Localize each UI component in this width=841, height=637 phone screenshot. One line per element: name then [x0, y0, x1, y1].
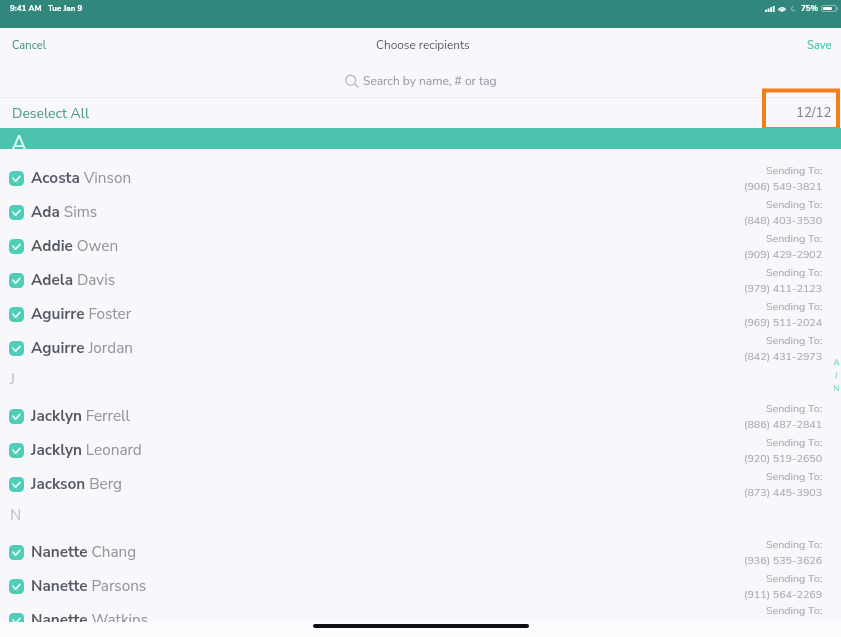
staticText: (969) 511-2024	[744, 315, 823, 330]
staticText: Sending To:	[766, 469, 823, 484]
staticText: Jackson Berg	[31, 474, 123, 495]
button[interactable]: Jump to section J	[832, 368, 840, 381]
staticText: Search by name, # or tag	[363, 73, 497, 89]
other: Home indicator	[313, 624, 529, 628]
staticText: Tue Jan 9	[48, 3, 83, 14]
button[interactable]: Addie Owen	[0, 229, 841, 263]
staticText: (873) 445-3903	[744, 485, 823, 500]
staticText: Ada Sims	[31, 202, 98, 223]
staticText: (979) 411-2123	[744, 281, 823, 296]
button[interactable]: Save	[793, 31, 841, 60]
staticText: Aguirre Foster	[31, 304, 132, 325]
staticText: (909) 429-2902	[744, 247, 823, 262]
button[interactable]: Nanette Parsons	[0, 569, 841, 603]
staticText: (920) 519-2650	[744, 451, 823, 466]
button[interactable]: Jump to section A	[832, 355, 840, 368]
button[interactable]: Aguirre Foster	[0, 297, 841, 331]
staticText: Choose recipients	[376, 37, 470, 53]
staticText: Jacklyn Ferrell	[31, 406, 131, 427]
staticText: Sending To:	[766, 299, 823, 314]
staticText: Sending To:	[766, 197, 823, 212]
staticText: Sending To:	[766, 571, 823, 586]
staticText: Addie Owen	[31, 236, 119, 257]
staticText: 75%	[801, 3, 819, 14]
staticText: Save	[807, 38, 832, 53]
staticText: Deselect All	[12, 104, 90, 123]
staticText: J	[835, 369, 838, 381]
staticText: (848) 403-3530	[744, 213, 823, 228]
staticText: Acosta Vinson	[31, 168, 132, 189]
staticText: Sending To:	[766, 231, 823, 246]
button[interactable]: Deselect All	[0, 99, 104, 128]
staticText: (842) 431-2973	[744, 349, 823, 364]
staticText: Nanette Parsons	[31, 576, 147, 597]
staticText: Jacklyn Leonard	[31, 440, 142, 461]
button[interactable]: Jacklyn Leonard	[0, 433, 841, 467]
button[interactable]: Jacklyn Ferrell	[0, 399, 841, 433]
staticText: Sending To:	[766, 333, 823, 348]
button[interactable]: Nanette Watkins	[0, 603, 841, 637]
button[interactable]: Jump to section N	[832, 381, 840, 394]
button[interactable]: Jackson Berg	[0, 467, 841, 501]
staticText: Sending To:	[766, 163, 823, 178]
staticText: Sending To:	[766, 603, 823, 618]
staticText: Aguirre Jordan	[31, 338, 133, 359]
staticText: Sending To:	[766, 265, 823, 280]
button[interactable]: Aguirre Jordan	[0, 331, 841, 365]
staticText: A	[833, 356, 840, 368]
staticText: N	[10, 505, 22, 526]
staticText: (906) 549-3821	[744, 179, 823, 194]
staticText: Nanette Chang	[31, 542, 137, 563]
staticText: A	[11, 129, 28, 150]
staticText: 9:41 AM	[10, 3, 42, 14]
staticText: 12/12	[796, 104, 832, 122]
staticText: N	[833, 382, 840, 394]
button[interactable]: Ada Sims	[0, 195, 841, 229]
staticText: (911) 564-2269	[744, 587, 823, 602]
button[interactable]: Nanette Chang	[0, 535, 841, 569]
button[interactable]: Cancel	[0, 31, 60, 60]
staticText: Cancel	[12, 38, 46, 53]
button[interactable]: Adela Davis	[0, 263, 841, 297]
staticText: J	[10, 369, 15, 390]
staticText: Sending To:	[766, 401, 823, 416]
staticText: Sending To:	[766, 537, 823, 552]
staticText: Sending To:	[766, 435, 823, 450]
staticText: Adela Davis	[31, 270, 116, 291]
staticText: (886) 487-2841	[744, 417, 823, 432]
staticText: (936) 535-3626	[744, 553, 823, 568]
button[interactable]: Acosta Vinson	[0, 161, 841, 195]
button[interactable]: Search by name, # or tag	[0, 62, 841, 98]
staticText: Nanette Watkins	[31, 610, 149, 631]
